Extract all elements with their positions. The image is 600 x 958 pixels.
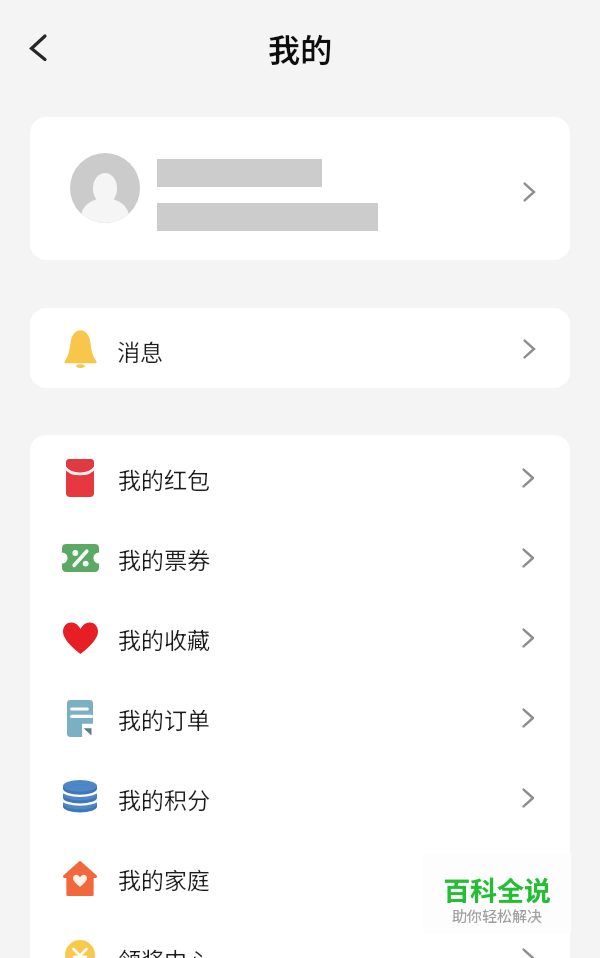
staticText: 我的 bbox=[0, 25, 600, 71]
button[interactable]: 消息 bbox=[30, 308, 570, 388]
button[interactable] bbox=[30, 117, 570, 260]
staticText: 我的红包 bbox=[118, 462, 210, 495]
button[interactable]: 领奖中心 bbox=[30, 918, 570, 958]
staticText: 我的订单 bbox=[118, 702, 210, 735]
staticText: 助你轻松解决 bbox=[423, 905, 571, 927]
staticText: 消息 bbox=[117, 334, 163, 367]
staticText: 我的票券 bbox=[118, 542, 210, 575]
staticText: 百科全说 bbox=[423, 870, 571, 909]
button[interactable]: 我的积分 bbox=[30, 758, 570, 838]
button[interactable]: Back bbox=[20, 24, 56, 60]
button[interactable]: 我的收藏 bbox=[30, 598, 570, 678]
staticText: 领奖中心 bbox=[118, 942, 210, 958]
staticText: 我的收藏 bbox=[118, 622, 210, 655]
button[interactable]: 我的红包 bbox=[30, 438, 570, 518]
button[interactable]: 我的票券 bbox=[30, 518, 570, 598]
button[interactable]: 我的订单 bbox=[30, 678, 570, 758]
staticText: 我的家庭 bbox=[118, 862, 210, 895]
button[interactable]: 我的家庭 bbox=[30, 838, 570, 918]
staticText: 我的积分 bbox=[118, 782, 210, 815]
